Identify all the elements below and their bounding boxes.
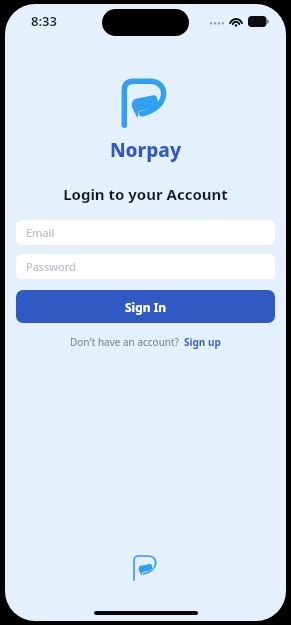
staticText: Sign In: [125, 299, 167, 315]
staticText: Don't have an account?: [70, 335, 179, 349]
staticText: Sign up: [184, 335, 221, 349]
button[interactable]: Password: [16, 254, 275, 279]
other: Norpay logo: [133, 555, 159, 581]
button[interactable]: Email: [16, 220, 275, 245]
staticText: 8:33: [31, 12, 57, 30]
staticText: Norpay: [5, 137, 286, 163]
button[interactable]: Sign In: [16, 290, 275, 323]
staticText: Password: [26, 259, 76, 274]
button[interactable]: Sign up: [184, 335, 221, 349]
other: Norpay logo: [121, 78, 171, 128]
staticText: Email: [26, 225, 55, 240]
staticText: Login to your Account: [5, 184, 286, 204]
